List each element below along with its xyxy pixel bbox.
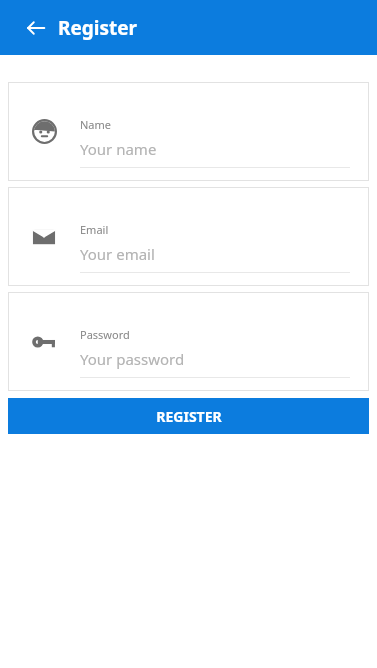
staticText: Register [58, 15, 138, 41]
other: Name [8, 82, 80, 181]
staticText: Password [80, 327, 130, 342]
button[interactable]: Name [8, 82, 369, 181]
button[interactable]: REGISTER [8, 398, 369, 434]
staticText: REGISTER [156, 407, 222, 426]
staticText: Your email [80, 244, 155, 264]
button[interactable]: Password [8, 292, 369, 391]
staticText: Name [80, 117, 112, 132]
staticText: Your password [80, 349, 185, 369]
button[interactable]: Back [14, 6, 58, 50]
other: Password [8, 292, 80, 391]
other: Email [8, 187, 80, 286]
staticText: Your name [80, 139, 157, 159]
button[interactable]: Email [8, 187, 369, 286]
staticText: Email [80, 222, 109, 237]
